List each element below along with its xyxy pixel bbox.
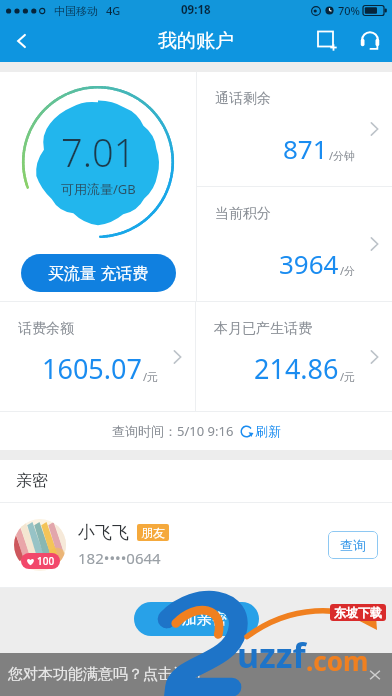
staticText: 70% <box>338 3 360 18</box>
button[interactable]: 查询 <box>328 531 378 559</box>
staticText: 871 <box>283 131 328 166</box>
staticText: /元 <box>340 369 356 384</box>
button[interactable]: 本月已产生话费 <box>196 302 392 411</box>
button[interactable]: 添加亲密 <box>134 602 259 636</box>
staticText: 09:18 <box>181 2 211 18</box>
staticText: 本月已产生话费 <box>214 320 312 338</box>
staticText: 查询时间： <box>112 423 177 439</box>
staticText: 添加亲密 <box>167 610 227 629</box>
staticText: 7.01 <box>61 126 136 178</box>
staticText: /分钟 <box>329 148 356 163</box>
button[interactable]: Customer service <box>348 20 392 62</box>
staticText: uzzf <box>237 632 306 678</box>
staticText: 可用流量/GB <box>61 180 136 198</box>
staticText: 当前积分 <box>215 205 271 223</box>
button[interactable]: Back <box>0 20 44 62</box>
staticText: 您对本功能满意吗？点击评价 <box>8 665 203 684</box>
staticText: 我的账户 <box>158 29 234 53</box>
button[interactable]: 话费余额 <box>0 302 195 411</box>
staticText: 1605.07 <box>42 350 142 387</box>
staticText: 话费余额 <box>18 320 74 338</box>
button[interactable]: 您对本功能满意吗？点击评价 <box>0 653 392 696</box>
staticText: 朋友 <box>141 525 165 540</box>
staticText: 查询 <box>340 537 366 553</box>
staticText: .com <box>306 643 369 678</box>
staticText: 4G <box>106 3 121 18</box>
button[interactable]: 当前积分 <box>197 187 392 301</box>
staticText: 小飞飞 <box>78 522 129 543</box>
staticText: 东坡下载 <box>334 605 382 620</box>
button[interactable]: Add <box>306 20 348 62</box>
button[interactable]: 刷新 <box>240 423 281 439</box>
staticText: /分 <box>340 263 356 278</box>
button[interactable]: 通话剩余 <box>197 72 392 186</box>
staticText: 3964 <box>279 246 339 281</box>
staticText: /元 <box>143 369 159 384</box>
button[interactable]: 买流量 充话费 <box>21 254 176 292</box>
staticText: 中国移动 <box>54 4 98 18</box>
staticText: 买流量 充话费 <box>48 262 149 284</box>
staticText: 5/10 9:16 <box>177 422 234 440</box>
staticText: 刷新 <box>255 423 281 439</box>
staticText: 通话剩余 <box>215 90 271 108</box>
staticText: 亲密 <box>16 471 48 491</box>
staticText: 214.86 <box>254 350 339 387</box>
staticText: 182••••0644 <box>78 548 161 568</box>
button[interactable]: 100 <box>0 503 392 587</box>
staticText: 100 <box>37 554 55 568</box>
